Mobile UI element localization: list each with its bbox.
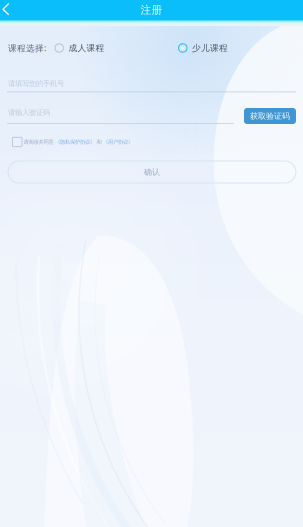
staticText: 《用户协议》 (103, 139, 133, 145)
button[interactable]: 确认 (8, 161, 296, 183)
staticText: 和 (96, 139, 101, 145)
button[interactable]: 获取验证码 (244, 108, 296, 124)
staticText: 请输入验证码 (8, 108, 50, 117)
staticText: 请填写您的手机号 (8, 79, 64, 88)
staticText: 课程选择: (8, 42, 46, 54)
staticText: 获取验证码 (250, 111, 290, 121)
button[interactable]: Back (0, 0, 24, 20)
staticText: 成人课程 (68, 42, 104, 53)
staticText: 《隐私保护协议》 (55, 139, 95, 145)
button[interactable]: 成人课程 (46, 42, 104, 53)
staticText: 请阅读并同意 (23, 139, 53, 145)
button[interactable]: 少儿课程 (179, 42, 228, 53)
staticText: 少儿课程 (192, 42, 228, 53)
button[interactable]: 请阅读并同意 (12, 136, 242, 147)
staticText: 注册 (140, 3, 162, 17)
staticText: 确认 (144, 167, 160, 177)
